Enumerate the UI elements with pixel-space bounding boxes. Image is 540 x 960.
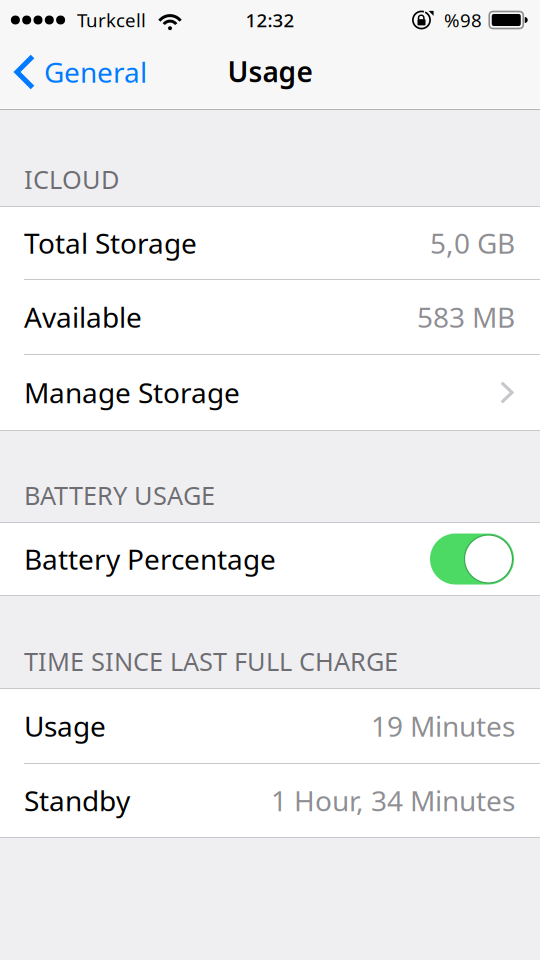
staticText: 19 Minutes	[371, 707, 515, 745]
staticText: Usage	[24, 707, 106, 745]
staticText: 5,0 GB	[430, 224, 515, 262]
staticText: Turkcell	[77, 8, 146, 32]
staticText: Battery Percentage	[24, 540, 276, 578]
staticText: General	[44, 53, 147, 91]
staticText: Total Storage	[24, 224, 197, 262]
staticText: Usage	[227, 53, 312, 90]
staticText: 1 Hour, 34 Minutes	[271, 782, 515, 819]
staticText: Available	[24, 298, 142, 336]
staticText: ICLOUD	[24, 162, 119, 196]
button[interactable]: Battery Percentage	[430, 533, 514, 584]
staticText: Manage Storage	[24, 374, 240, 411]
staticText: 12:32	[245, 8, 294, 32]
staticText: Standby	[24, 782, 130, 819]
button[interactable]: Manage Storage	[0, 355, 540, 430]
staticText: BATTERY USAGE	[24, 478, 215, 512]
button[interactable]: General	[0, 40, 157, 108]
staticText: TIME SINCE LAST FULL CHARGE	[24, 644, 398, 678]
staticText: 583 MB	[417, 298, 515, 336]
staticText: %98	[444, 8, 482, 32]
